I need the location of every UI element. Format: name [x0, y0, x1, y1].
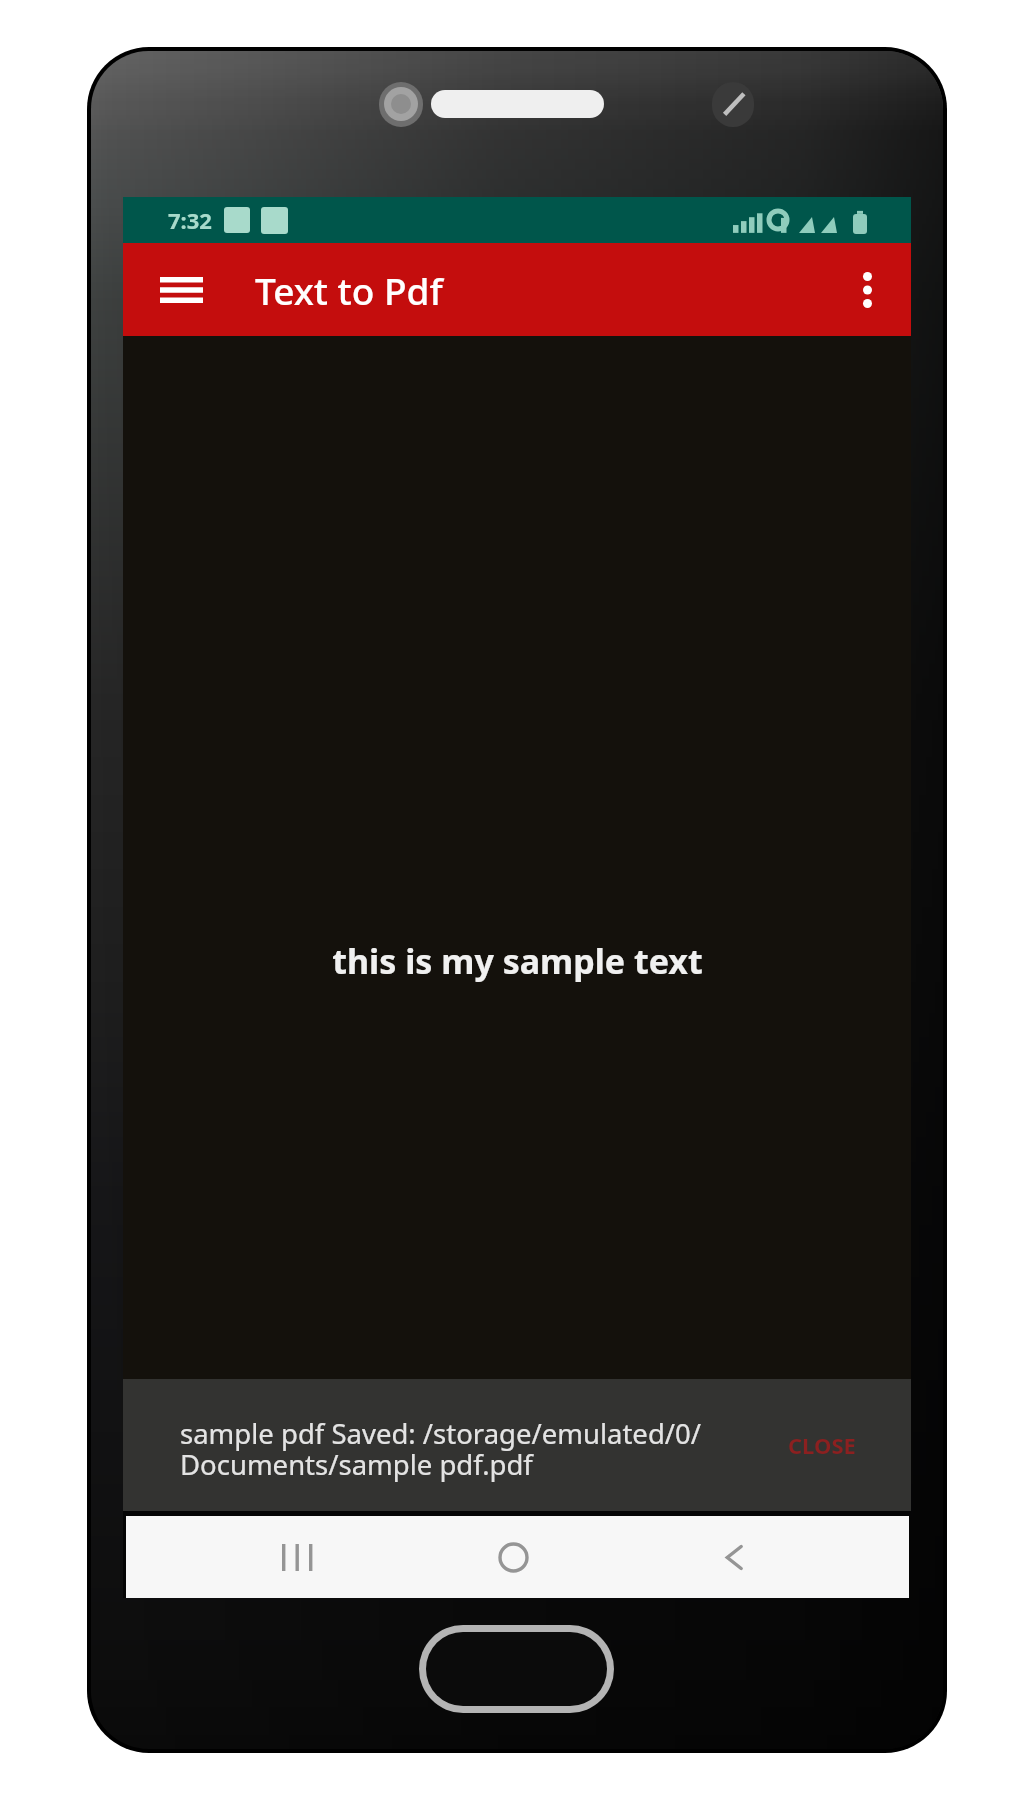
staticText: CLOSE: [788, 1430, 856, 1460]
staticText: sample pdf Saved: /storage/emulated/0/Do…: [180, 1415, 725, 1483]
button[interactable]: Open navigation drawer: [160, 260, 203, 320]
button[interactable]: More options: [823, 243, 911, 336]
button[interactable]: Home: [453, 1516, 573, 1598]
staticText: this is my sample text: [332, 938, 703, 982]
button[interactable]: CLOSE: [780, 1422, 864, 1468]
staticText: Text to Pdf: [255, 265, 443, 315]
button[interactable]: Back: [674, 1516, 794, 1598]
staticText: 7:32: [168, 205, 212, 235]
button[interactable]: Recents: [237, 1516, 357, 1598]
